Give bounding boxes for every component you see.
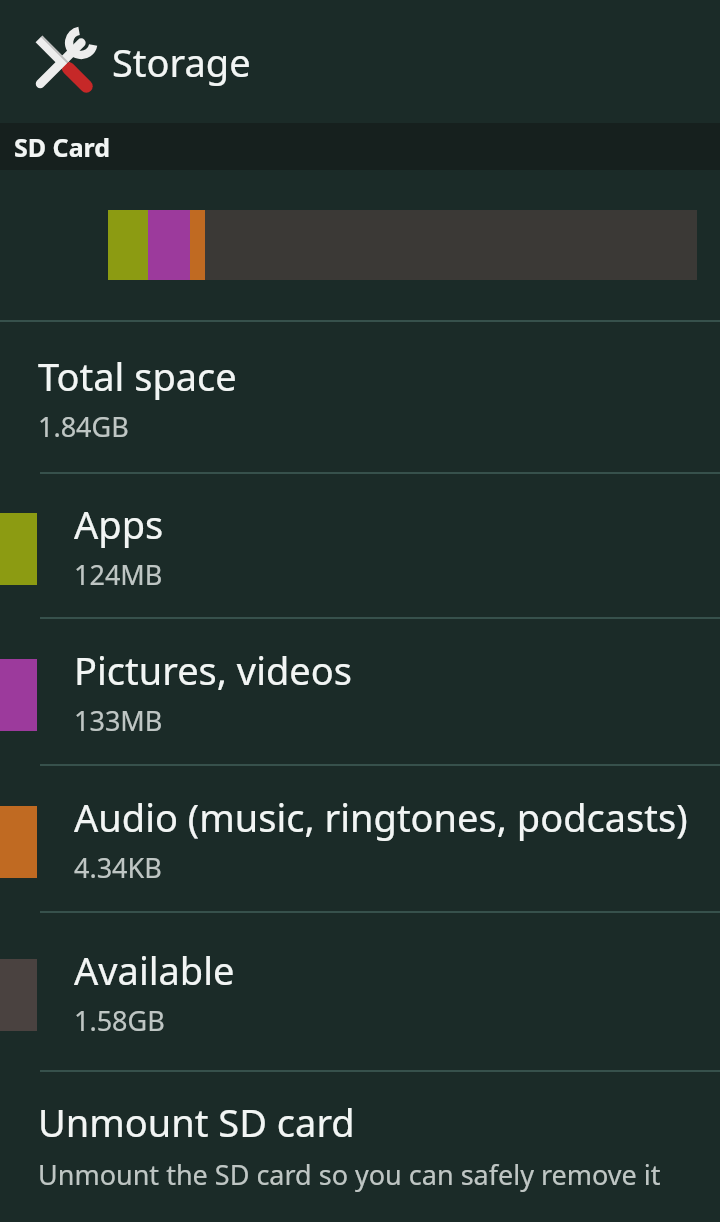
staticText: Available bbox=[74, 944, 235, 996]
staticText: SD Card bbox=[14, 130, 111, 164]
staticText: 1.58GB bbox=[74, 1002, 165, 1039]
button[interactable]: Available bbox=[0, 913, 720, 1070]
staticText: Audio (music, ringtones, podcasts) bbox=[74, 791, 688, 843]
staticText: Unmount SD card bbox=[38, 1096, 355, 1148]
staticText: Storage bbox=[112, 36, 251, 88]
staticText: Apps bbox=[74, 498, 164, 550]
button[interactable]: Audio (music, ringtones, podcasts) bbox=[0, 766, 720, 911]
staticText: 124MB bbox=[74, 556, 163, 593]
staticText: 4.34KB bbox=[74, 849, 162, 886]
staticText: Total space bbox=[38, 350, 237, 402]
button[interactable]: Apps bbox=[0, 474, 720, 617]
staticText: Pictures, videos bbox=[74, 644, 352, 696]
staticText: 133MB bbox=[74, 702, 163, 739]
staticText: 1.84GB bbox=[38, 408, 129, 445]
other: Storage settings icon bbox=[30, 30, 94, 94]
button[interactable]: Pictures, videos bbox=[0, 619, 720, 764]
staticText: Unmount the SD card so you can safely re… bbox=[38, 1156, 661, 1193]
button[interactable]: Total space bbox=[0, 322, 720, 472]
button[interactable]: Unmount SD card bbox=[0, 1072, 720, 1193]
